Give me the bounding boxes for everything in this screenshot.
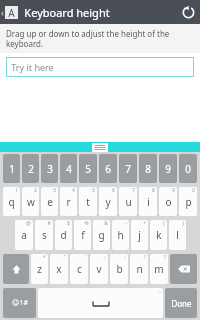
button[interactable]: 7 (119, 154, 137, 183)
staticText: y (105, 195, 111, 209)
staticText: t (86, 195, 90, 209)
button[interactable]: 1 (3, 187, 20, 216)
staticText: - (125, 220, 127, 227)
button[interactable]: 8 (139, 187, 157, 216)
staticText: 2 (34, 187, 37, 194)
staticText: 5 (92, 187, 95, 194)
staticText: # (47, 220, 51, 227)
staticText: $ (67, 220, 70, 227)
staticText: 0 (192, 187, 195, 194)
staticText: 5 (85, 162, 91, 176)
button[interactable]: 0 (179, 154, 197, 183)
staticText: 3 (47, 162, 53, 176)
button[interactable]: 2 (22, 154, 39, 183)
staticText: 6 (105, 162, 111, 176)
button[interactable]: 3 (41, 154, 58, 183)
staticText: l (176, 228, 179, 242)
button[interactable]: ; (110, 254, 128, 284)
staticText: ( (163, 220, 165, 227)
button[interactable]: Reset (176, 0, 200, 24)
button[interactable]: 4 (60, 154, 77, 183)
staticText: i (147, 195, 150, 209)
button[interactable]: @ (15, 220, 33, 250)
button[interactable]: : (90, 254, 108, 284)
button[interactable]: Drag to resize keyboard (0, 142, 200, 152)
button[interactable]: 5 (79, 154, 97, 183)
staticText: 8 (152, 187, 155, 194)
staticText: u (125, 195, 132, 209)
button[interactable]: 0 (179, 187, 197, 216)
staticText: 7 (132, 187, 135, 194)
button[interactable]: 7 (119, 187, 137, 216)
staticText: d (60, 228, 67, 242)
button[interactable]: Try it here (6, 57, 194, 77)
button[interactable]: 2 (22, 187, 39, 216)
staticText: 6 (112, 187, 115, 194)
button[interactable]: 6 (99, 187, 117, 216)
button[interactable]: $ (55, 220, 72, 250)
button[interactable]: Shift (3, 254, 29, 284)
staticText: ! (144, 254, 146, 261)
staticText: z (37, 262, 42, 276)
button[interactable]: * (31, 254, 48, 284)
staticText: 8 (145, 162, 151, 176)
staticText: v (96, 262, 102, 276)
staticText: ‹ (1, 6, 4, 18)
button[interactable]: 6 (99, 154, 117, 183)
staticText: m (154, 262, 164, 276)
button[interactable]: ? (150, 254, 168, 284)
staticText: ☺1# (12, 298, 28, 308)
staticText: h (117, 228, 124, 242)
staticText: w (27, 195, 35, 209)
staticText: & (104, 220, 108, 227)
button[interactable]: 5 (79, 187, 97, 216)
button[interactable]: 3 (41, 187, 58, 216)
button[interactable]: " (50, 254, 68, 284)
staticText: j (138, 228, 141, 242)
staticText: 3 (53, 187, 56, 194)
staticText: 1 (15, 187, 18, 194)
staticText: ) (182, 220, 184, 227)
staticText: % (84, 220, 89, 227)
button[interactable]: Done (165, 288, 197, 318)
staticText: 1 (9, 162, 15, 176)
staticText: Try it here (11, 61, 54, 73)
staticText: + (143, 220, 146, 227)
button[interactable]: 9 (159, 154, 177, 183)
staticText: a (21, 228, 27, 242)
button[interactable]: & (93, 220, 110, 250)
staticText: o (165, 195, 172, 209)
staticText: r (66, 195, 71, 209)
staticText: n (136, 262, 143, 276)
staticText: x (56, 262, 62, 276)
button[interactable]: ( (150, 220, 167, 250)
button[interactable]: Backspace (170, 254, 197, 284)
staticText: ? (163, 254, 166, 261)
button[interactable]: 4 (60, 187, 77, 216)
staticText: 7 (125, 162, 131, 176)
button[interactable]: # (35, 220, 53, 250)
button[interactable]: Symbols (3, 288, 36, 318)
staticText: 9 (172, 187, 175, 194)
button[interactable]: 8 (139, 154, 157, 183)
staticText: " (63, 254, 66, 261)
button[interactable]: ! (130, 254, 148, 284)
staticText: 0 (185, 162, 191, 176)
button[interactable]: ' (70, 254, 88, 284)
button[interactable]: % (74, 220, 91, 250)
staticText: q (8, 195, 15, 209)
button[interactable]: Back (1, 0, 18, 24)
staticText: A (8, 6, 15, 19)
button[interactable]: 1 (3, 154, 20, 183)
staticText: Keyboard height (24, 5, 110, 20)
button[interactable]: 9 (159, 187, 177, 216)
staticText: 4 (72, 187, 75, 194)
button[interactable]: ) (169, 220, 186, 250)
button[interactable]: - (112, 220, 129, 250)
staticText: Drag up or down to adjust the height of … (6, 28, 194, 49)
staticText: f (81, 228, 85, 242)
staticText: p (185, 195, 192, 209)
button[interactable]: + (131, 220, 148, 250)
button[interactable]: Space (38, 288, 163, 318)
